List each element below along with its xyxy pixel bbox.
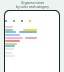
button[interactable] bbox=[5, 40, 20, 42]
button[interactable] bbox=[5, 43, 17, 45]
button[interactable] bbox=[5, 45, 15, 47]
button[interactable] bbox=[5, 31, 16, 33]
button[interactable] bbox=[5, 37, 23, 39]
button[interactable] bbox=[23, 29, 37, 31]
button[interactable] bbox=[5, 29, 13, 31]
button[interactable] bbox=[19, 31, 37, 33]
staticText: Organise notes by color and category bbox=[16, 1, 49, 9]
button[interactable] bbox=[25, 37, 37, 39]
button[interactable] bbox=[5, 34, 20, 36]
button[interactable] bbox=[5, 26, 13, 28]
